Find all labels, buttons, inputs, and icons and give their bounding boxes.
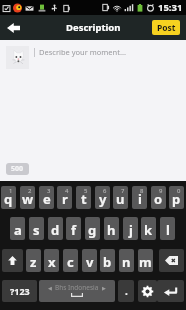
button[interactable]: p [169,186,184,209]
button[interactable]: h [104,217,119,240]
staticText: 5 [84,187,88,195]
button[interactable]: z [26,249,41,272]
staticText: Bhs Indonesia [55,283,99,292]
button[interactable]: Shift [2,249,23,272]
button[interactable]: u [113,186,128,209]
staticText: 7 [121,187,125,195]
button[interactable]: t [76,186,91,209]
staticText: y [99,190,107,208]
button[interactable]: f [66,217,81,240]
staticText: d [51,221,60,239]
staticText: l [166,221,170,239]
staticText: v [86,253,94,271]
staticText: 3 [47,187,51,195]
staticText: r [62,190,68,208]
button[interactable]: i [132,186,147,209]
button[interactable]: g [85,217,100,240]
staticText: w [22,190,34,208]
button[interactable]: Space [39,280,115,302]
button[interactable]: k [141,217,156,240]
button[interactable]: Backspace [159,249,184,272]
staticText: u [116,190,125,208]
staticText: ?123 [10,285,30,297]
button[interactable]: b [100,249,115,272]
staticText: s [33,221,40,239]
button[interactable]: m [138,249,153,272]
button[interactable]: j [123,217,138,240]
staticText: 1 [9,187,13,195]
staticText: 15:31 [158,1,183,14]
button[interactable]: c [63,249,78,272]
button[interactable]: Enter [157,280,184,302]
staticText: 0 [177,187,181,195]
button[interactable]: o [151,186,166,209]
staticText: b [103,253,112,271]
button[interactable]: y [95,186,110,209]
staticText: . [125,284,128,298]
button[interactable]: Attached photo [6,46,29,69]
button[interactable]: ?123 [2,280,37,302]
staticText: n [122,253,131,271]
button[interactable]: v [82,249,97,272]
staticText: j [129,221,133,239]
staticText: 6 [103,187,107,195]
staticText: 4 [65,187,69,195]
button[interactable]: x [44,249,59,272]
staticText: c [67,253,74,271]
button[interactable]: Settings [138,280,157,302]
staticText: Describe your moment... [39,47,126,57]
button[interactable]: Post [152,20,180,35]
button[interactable]: 500 [6,163,29,175]
staticText: x [48,253,56,271]
button[interactable]: q [1,186,16,209]
staticText: m [139,253,152,271]
staticText: h [107,221,116,239]
staticText: z [30,253,37,271]
staticText: k [144,221,153,239]
staticText: p [172,190,181,208]
button[interactable]: w [20,186,35,209]
staticText: o [154,190,163,208]
staticText: ◀ [48,285,52,291]
staticText: Description [66,21,121,34]
staticText: t [81,190,87,208]
staticText: g [88,221,97,239]
staticText: q [4,190,13,208]
staticText: Post [157,22,176,34]
staticText: ▶ [102,285,106,291]
button[interactable]: r [57,186,72,209]
staticText: e [43,190,51,208]
staticText: 500 [11,164,24,174]
staticText: 2 [28,187,32,195]
button[interactable]: s [29,217,44,240]
staticText: 9 [159,187,163,195]
button[interactable]: d [48,217,63,240]
button[interactable]: . [118,280,134,302]
button[interactable]: Back [0,15,26,40]
button[interactable]: l [160,217,175,240]
staticText: i [138,190,142,208]
button[interactable]: e [39,186,54,209]
button[interactable]: n [119,249,134,272]
staticText: f [71,221,77,239]
staticText: a [14,221,22,239]
button[interactable]: a [10,217,25,240]
staticText: 8 [140,187,144,195]
